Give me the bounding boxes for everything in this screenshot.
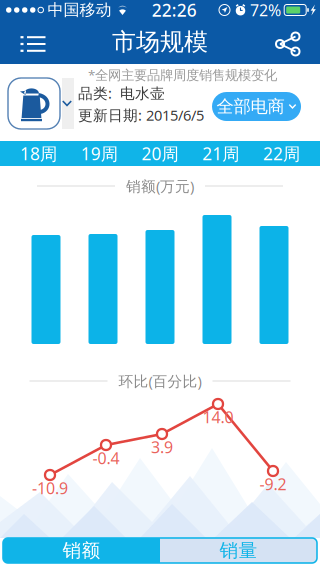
staticText: -0.4 xyxy=(92,447,119,469)
staticText: 20周 xyxy=(141,142,178,165)
staticText: 19周 xyxy=(81,142,118,165)
staticText: 全部电商 xyxy=(216,96,284,117)
button[interactable]: 销量 xyxy=(160,538,317,563)
button[interactable]: 全部电商 xyxy=(212,92,301,121)
button[interactable]: 销额 xyxy=(3,538,160,563)
staticText: 销量 xyxy=(219,539,257,562)
staticText: 18周 xyxy=(20,142,57,165)
staticText: 销额(万元) xyxy=(126,176,194,196)
button[interactable]: 19周 xyxy=(69,141,130,166)
staticText: 更新日期: 2015/6/5 xyxy=(78,105,204,125)
staticText: 14.0 xyxy=(202,406,233,428)
staticText: *全网主要品牌周度销售规模变化 xyxy=(88,66,277,84)
button[interactable]: 22周 xyxy=(251,141,312,166)
staticText: 市场规模 xyxy=(112,27,208,57)
staticText: 22:26 xyxy=(152,0,197,21)
staticText: 销额 xyxy=(62,539,100,562)
staticText: -9.2 xyxy=(259,473,286,495)
staticText: 22周 xyxy=(263,142,300,165)
button[interactable]: 18周 xyxy=(8,141,69,166)
staticText: 中国移动 xyxy=(47,0,111,20)
button[interactable]: 20周 xyxy=(130,141,190,166)
staticText: 3.9 xyxy=(151,436,173,458)
staticText: 72% xyxy=(250,0,281,21)
button[interactable]: Share xyxy=(262,20,320,64)
staticText: -10.9 xyxy=(32,477,68,499)
staticText: 环比(百分比) xyxy=(118,371,201,391)
staticText: 21周 xyxy=(202,142,239,165)
button[interactable]: 21周 xyxy=(190,141,251,166)
button[interactable]: Menu xyxy=(0,20,58,64)
staticText: 品类: 电水壶 xyxy=(78,83,165,103)
button[interactable]: Choose category xyxy=(8,78,74,129)
